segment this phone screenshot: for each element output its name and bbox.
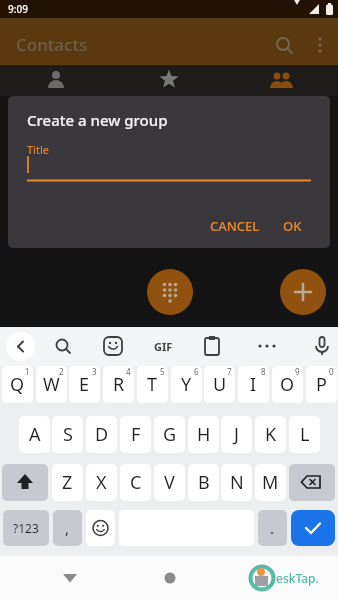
- staticText: Q: [10, 372, 25, 397]
- button[interactable]: [6, 332, 35, 361]
- button[interactable]: Y: [171, 366, 202, 403]
- button[interactable]: [270, 31, 298, 59]
- staticText: B: [198, 470, 210, 495]
- staticText: 9:09: [8, 2, 28, 16]
- button[interactable]: Z: [52, 464, 83, 501]
- staticText: C: [130, 470, 142, 495]
- staticText: N: [230, 470, 244, 495]
- button[interactable]: T: [137, 366, 168, 403]
- button[interactable]: [289, 464, 335, 501]
- button[interactable]: [253, 332, 281, 361]
- staticText: K: [265, 422, 277, 447]
- button[interactable]: M: [255, 464, 286, 501]
- button[interactable]: W: [36, 366, 67, 403]
- button[interactable]: U: [204, 366, 235, 403]
- button[interactable]: [0, 65, 113, 96]
- staticText: U: [213, 372, 227, 397]
- staticText: I: [250, 372, 257, 397]
- button[interactable]: .: [258, 510, 287, 546]
- button[interactable]: E: [69, 366, 100, 403]
- staticText: 8: [261, 366, 266, 377]
- button[interactable]: B: [188, 464, 219, 501]
- staticText: .: [270, 518, 275, 538]
- staticText: W: [43, 372, 60, 397]
- button[interactable]: GIF: [148, 332, 178, 361]
- button[interactable]: [50, 564, 90, 592]
- staticText: 4: [126, 366, 131, 377]
- button[interactable]: OK: [274, 212, 310, 240]
- staticText: 3: [92, 366, 97, 377]
- staticText: O: [280, 372, 295, 397]
- staticText: H: [197, 422, 211, 447]
- staticText: Contacts: [16, 33, 88, 56]
- staticText: Y: [181, 372, 192, 397]
- button[interactable]: [49, 332, 77, 361]
- button[interactable]: C: [120, 464, 151, 501]
- button[interactable]: [147, 269, 193, 315]
- button[interactable]: X: [86, 464, 117, 501]
- staticText: V: [164, 470, 175, 495]
- staticText: GIF: [154, 339, 173, 354]
- staticText: Title: [27, 142, 49, 157]
- button[interactable]: P: [306, 366, 337, 403]
- staticText: A: [29, 422, 41, 447]
- staticText: P: [316, 372, 327, 397]
- button[interactable]: CANCEL: [202, 212, 268, 240]
- button[interactable]: N: [221, 464, 252, 501]
- staticText: X: [96, 470, 107, 495]
- staticText: 2: [59, 366, 64, 377]
- staticText: L: [300, 422, 310, 447]
- staticText: 6: [194, 366, 199, 377]
- staticText: CANCEL: [210, 217, 260, 235]
- staticText: ?123: [13, 520, 39, 536]
- button[interactable]: ?123: [3, 510, 49, 546]
- button[interactable]: G: [154, 416, 185, 453]
- staticText: Create a new group: [27, 110, 168, 130]
- staticText: Z: [62, 470, 73, 495]
- button[interactable]: O: [272, 366, 303, 403]
- button[interactable]: V: [154, 464, 185, 501]
- button[interactable]: [99, 332, 127, 361]
- staticText: D: [95, 422, 109, 447]
- button[interactable]: [150, 564, 190, 592]
- staticText: F: [131, 422, 141, 447]
- button[interactable]: I: [238, 366, 269, 403]
- button[interactable]: R: [103, 366, 134, 403]
- button[interactable]: ,: [53, 510, 82, 546]
- staticText: T: [147, 372, 158, 397]
- staticText: 9: [295, 366, 300, 377]
- button[interactable]: [308, 332, 336, 361]
- button[interactable]: [306, 31, 334, 59]
- staticText: G: [163, 422, 177, 447]
- button[interactable]: [280, 269, 326, 315]
- staticText: M: [262, 470, 279, 495]
- staticText: J: [234, 422, 239, 447]
- staticText: E: [79, 372, 90, 397]
- button[interactable]: H: [188, 416, 219, 453]
- button[interactable]: [86, 510, 115, 546]
- button[interactable]: J: [221, 416, 252, 453]
- staticText: S: [63, 422, 73, 447]
- button[interactable]: [291, 510, 335, 546]
- button[interactable]: [113, 65, 225, 96]
- staticText: 7: [227, 366, 232, 377]
- staticText: 1: [25, 366, 30, 377]
- staticText: 5: [160, 366, 165, 377]
- button[interactable]: D: [86, 416, 117, 453]
- button[interactable]: [2, 464, 48, 501]
- staticText: 0: [329, 366, 334, 377]
- button[interactable]: F: [120, 416, 151, 453]
- button[interactable]: S: [52, 416, 83, 453]
- button[interactable]: A: [19, 416, 50, 453]
- staticText: R: [113, 372, 125, 397]
- button[interactable]: [198, 332, 226, 361]
- staticText: OK: [283, 217, 302, 235]
- button[interactable]: K: [255, 416, 286, 453]
- button[interactable]: Q: [2, 366, 33, 403]
- button[interactable]: L: [289, 416, 320, 453]
- staticText: ,: [65, 518, 70, 538]
- staticText: eskTap.: [276, 570, 319, 586]
- button[interactable]: [225, 65, 338, 96]
